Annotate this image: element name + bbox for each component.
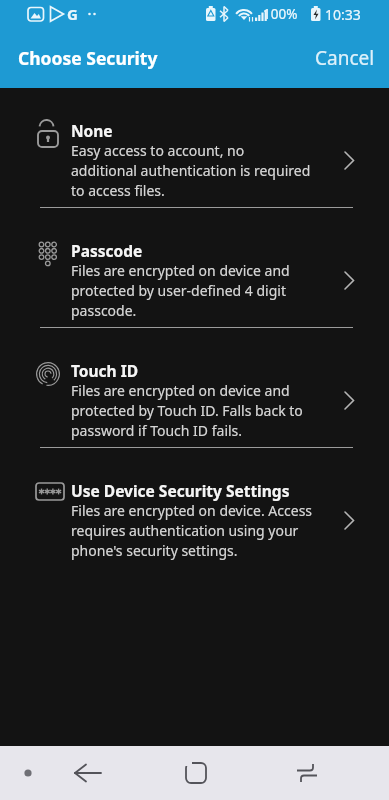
button[interactable]: [295, 763, 319, 783]
staticText: 100%: [263, 5, 298, 23]
staticText: Files are encrypted on device and protec…: [71, 261, 290, 320]
staticText: Passcode: [71, 240, 143, 261]
button[interactable]: [74, 763, 102, 783]
button[interactable]: [182, 762, 208, 784]
staticText: Files are encrypted on device and protec…: [71, 381, 303, 440]
button[interactable]: Passcode: [0, 240, 389, 320]
staticText: Files are encrypted on device. Access re…: [71, 501, 313, 560]
button[interactable]: Touch ID: [0, 360, 389, 440]
staticText: Easy access to account, no additional au…: [71, 141, 311, 200]
staticText: G: [67, 4, 78, 24]
button[interactable]: Cancel: [315, 45, 375, 71]
staticText: 10:33: [325, 5, 361, 24]
staticText: Use Device Security Settings: [71, 480, 290, 501]
staticText: Touch ID: [71, 360, 139, 381]
staticText: Cancel: [315, 45, 375, 71]
button[interactable]: None: [0, 120, 389, 200]
staticText: None: [71, 120, 113, 141]
staticText: Choose Security: [18, 46, 158, 70]
button[interactable]: Use Device Security Settings: [0, 480, 389, 560]
